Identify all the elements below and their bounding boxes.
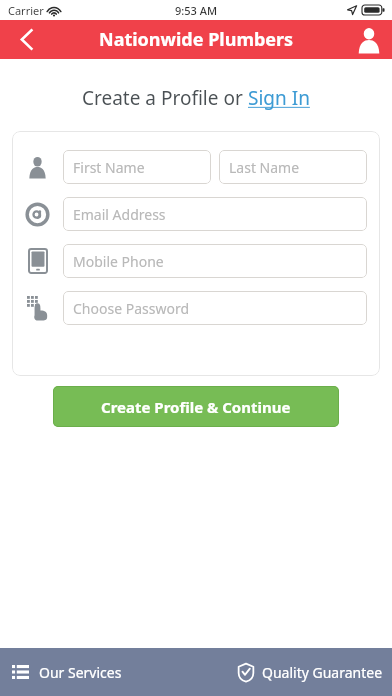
button[interactable]: Mobile Phone [63, 244, 367, 278]
button[interactable]: First Name [63, 150, 211, 184]
staticText: Choose Password [73, 299, 190, 318]
staticText: Nationwide Plumbers [99, 27, 294, 52]
button[interactable]: Create Profile & Continue [53, 386, 339, 427]
button[interactable]: Email Address [63, 197, 367, 231]
button[interactable]: Account [346, 20, 392, 59]
staticText: Carrier [8, 3, 44, 18]
staticText: Create Profile & Continue [101, 397, 291, 417]
button[interactable]: Choose Password [63, 291, 367, 325]
staticText: First Name [73, 158, 145, 177]
button[interactable]: Our Services [0, 648, 238, 696]
button[interactable]: Last Name [219, 150, 367, 184]
staticText: Mobile Phone [73, 252, 164, 271]
staticText: 9:53 AM [175, 3, 218, 18]
button[interactable]: Quality Guarantee [238, 648, 392, 696]
staticText: Sign In [248, 85, 310, 111]
button[interactable]: Back [0, 20, 52, 59]
staticText: Create a Profile or [82, 85, 248, 111]
button[interactable]: Sign In [248, 85, 310, 111]
staticText: Quality Guarantee [262, 663, 383, 682]
staticText: Our Services [39, 663, 122, 682]
staticText: Last Name [229, 158, 300, 177]
staticText: Email Address [73, 205, 166, 224]
